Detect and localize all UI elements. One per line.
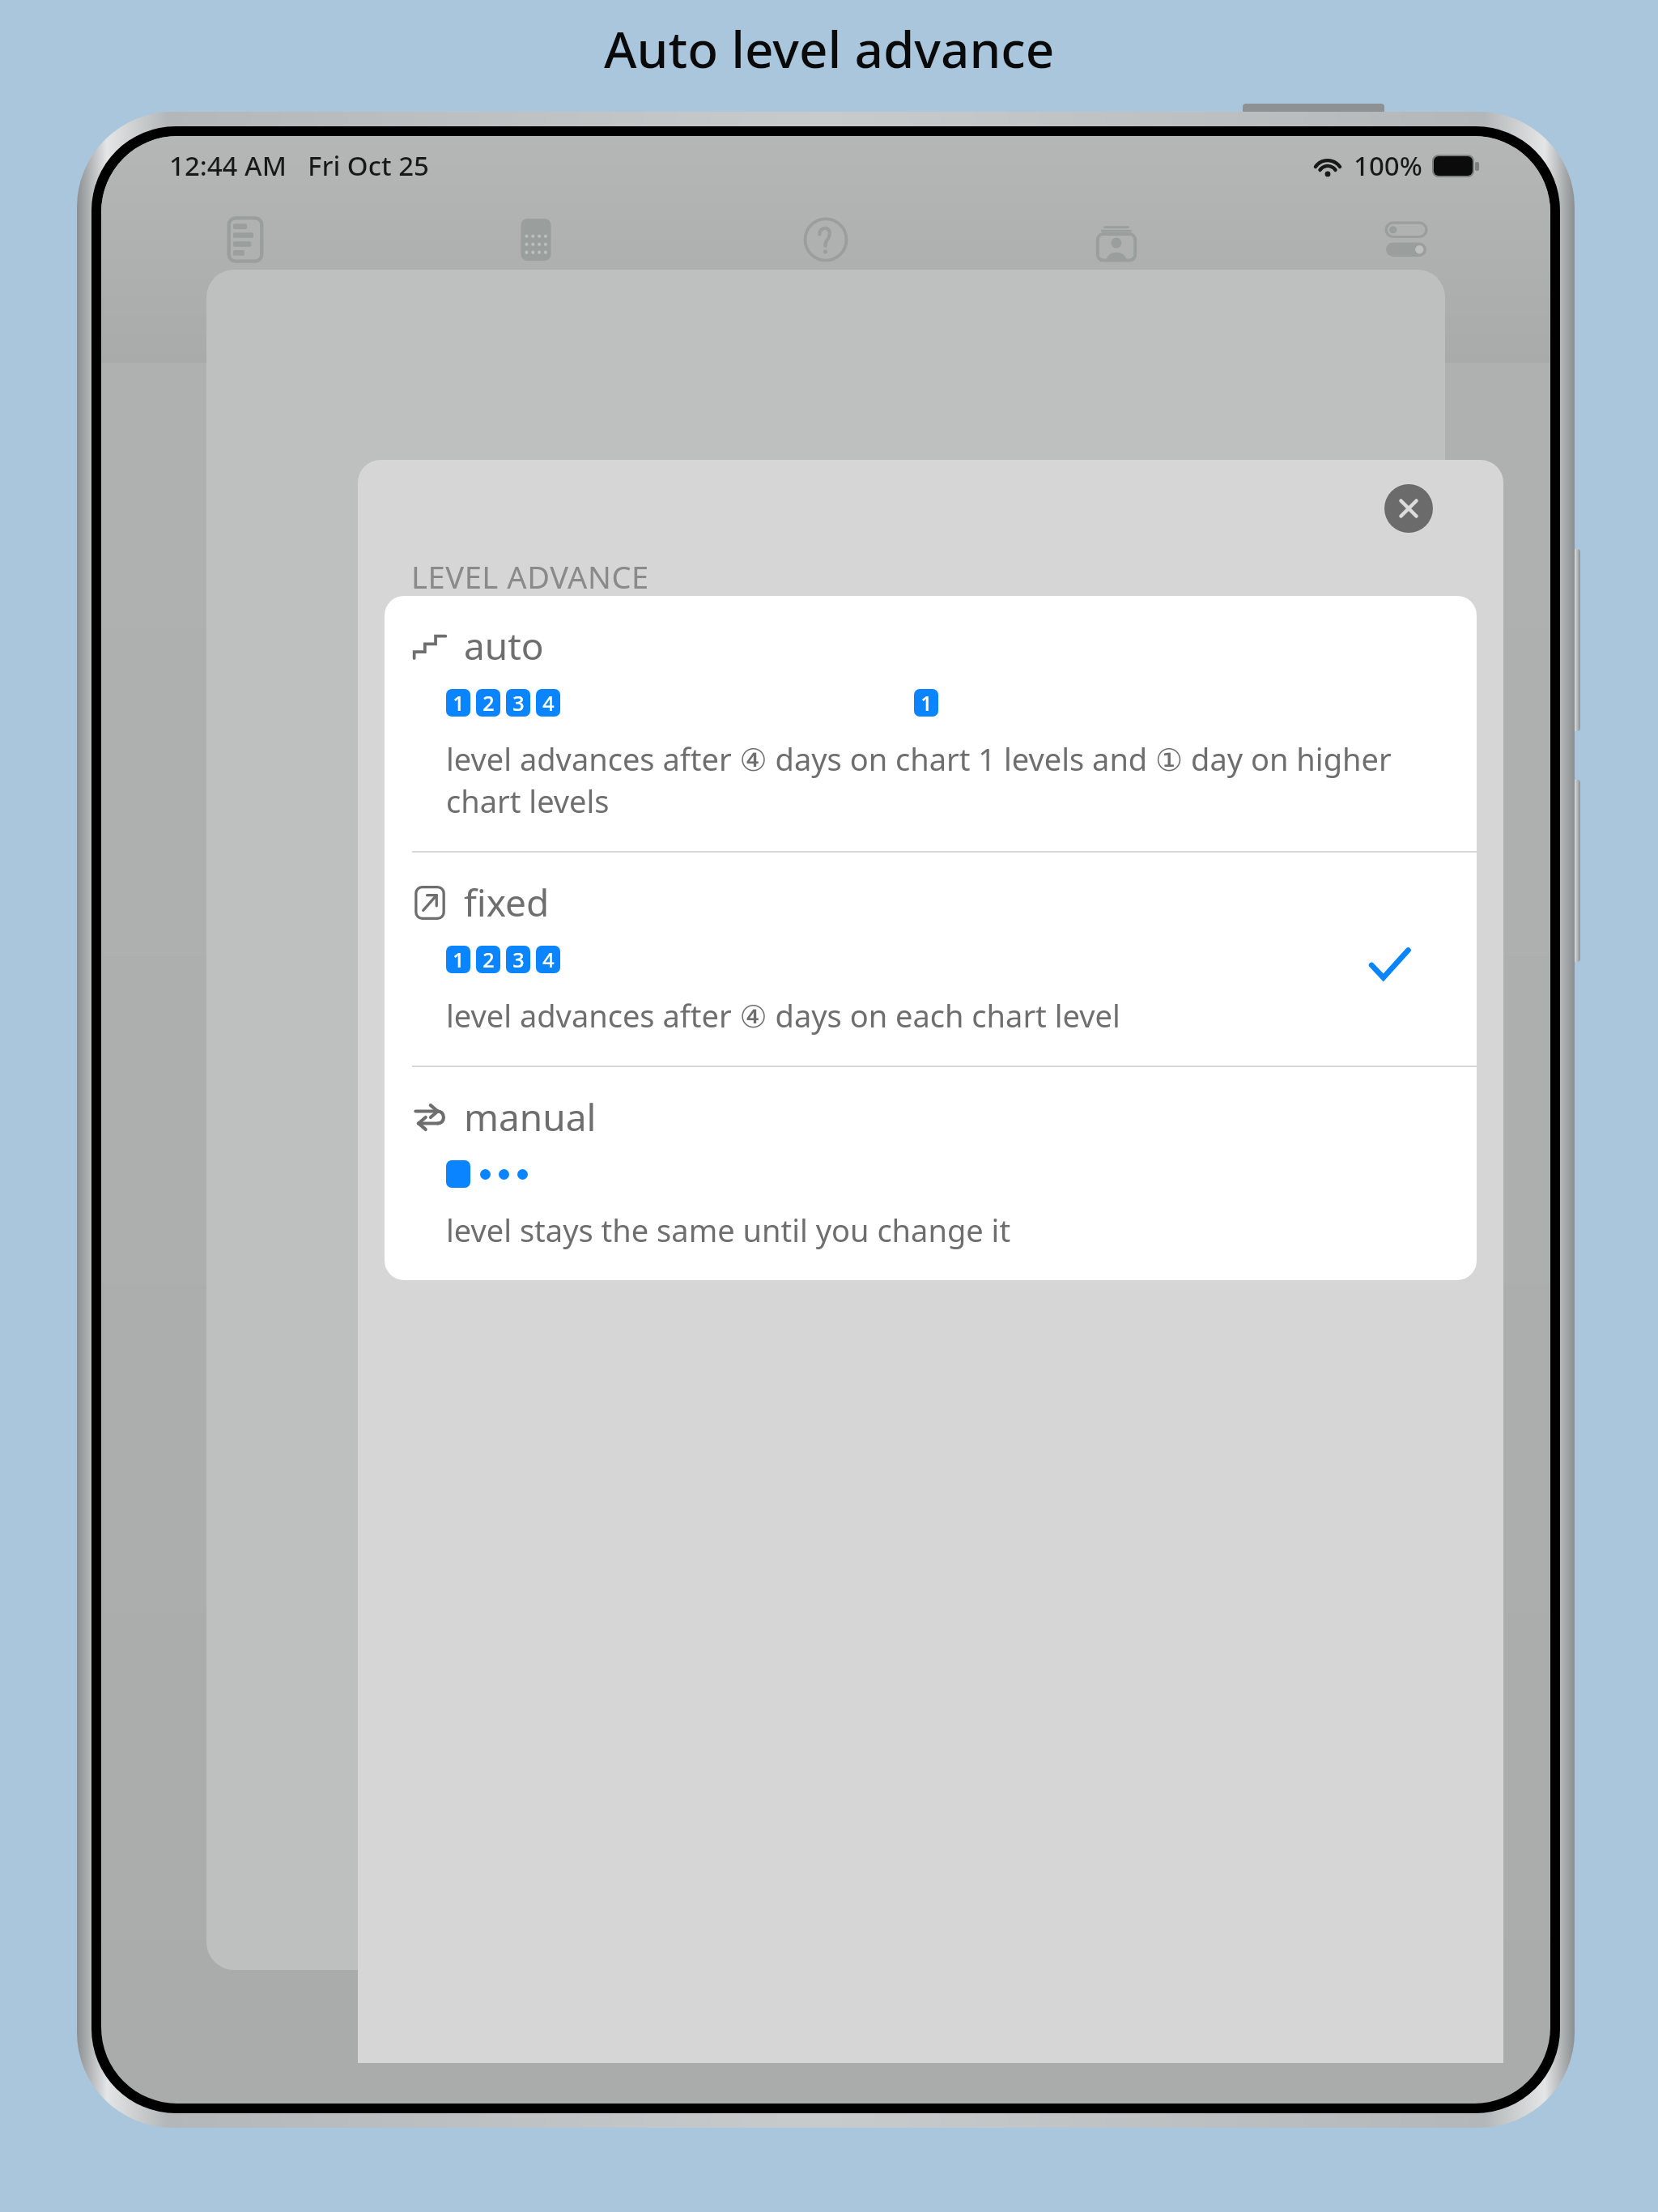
button[interactable]: Charts xyxy=(206,201,284,279)
staticText: 4 xyxy=(542,946,555,973)
staticText: level stays the same until you change it xyxy=(446,1209,1011,1251)
button[interactable]: Calendar xyxy=(497,201,575,279)
button[interactable]: Help xyxy=(787,201,865,279)
staticText: 3 xyxy=(512,946,525,973)
button[interactable]: Settings xyxy=(1367,201,1445,279)
staticText: LEVEL ADVANCE xyxy=(411,555,649,598)
staticText: 100% xyxy=(1354,147,1422,184)
staticText: 2 xyxy=(483,689,495,717)
staticText: 1 xyxy=(453,689,465,717)
staticText: auto xyxy=(464,620,544,671)
staticText: 12:44 AM xyxy=(169,147,287,184)
staticText: manual xyxy=(464,1091,597,1142)
staticText: 1 xyxy=(453,946,465,973)
button[interactable]: Profile xyxy=(1078,201,1155,279)
staticText: fixed xyxy=(464,877,550,928)
staticText: 3 xyxy=(512,689,525,717)
button[interactable]: Close xyxy=(1384,484,1433,533)
staticText: 1 xyxy=(920,689,933,717)
button[interactable]: manual xyxy=(385,1067,1477,1280)
staticText: Fri Oct 25 xyxy=(308,147,429,184)
button[interactable]: fixed xyxy=(385,853,1477,1067)
staticText: level advances after ④ days on chart 1 l… xyxy=(446,738,1444,822)
staticText: 4 xyxy=(542,689,555,717)
button[interactable]: auto xyxy=(385,596,1477,853)
staticText: Auto level advance xyxy=(604,15,1055,83)
staticText: level advances after ④ days on each char… xyxy=(446,994,1120,1036)
staticText: 2 xyxy=(483,946,495,973)
